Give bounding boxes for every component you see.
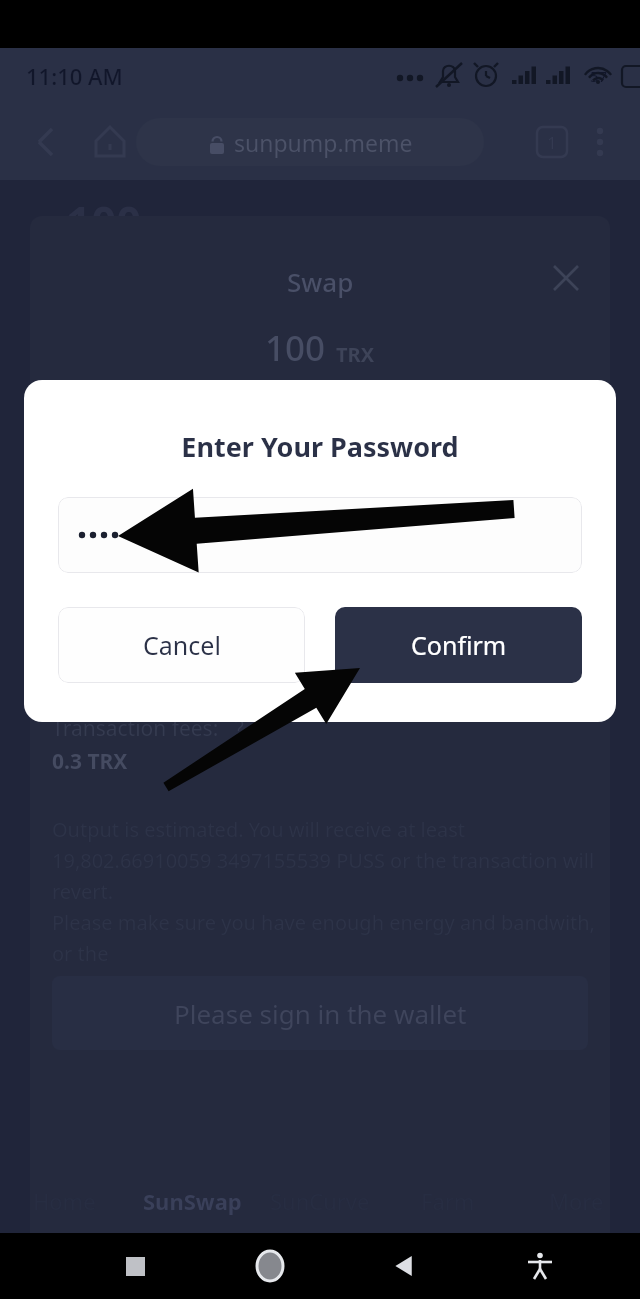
staticText: Confirm — [411, 628, 507, 662]
button[interactable]: Please sign in the wallet — [52, 976, 588, 1050]
staticText: 19,802.66910059 3497155539 PUSS — [52, 579, 404, 608]
staticText: 11:10 AM — [26, 61, 123, 91]
button[interactable]: Close — [548, 260, 584, 296]
staticText: Price Impact: ? — [52, 630, 207, 659]
staticText: TRX — [336, 341, 375, 368]
staticText: Cancel — [143, 628, 221, 662]
staticText: 57 — [590, 66, 608, 86]
staticText: Minimum Received: — [52, 546, 246, 575]
staticText: sunpump.meme — [234, 127, 413, 158]
staticText: -0.02% — [52, 663, 120, 692]
button[interactable]: Cancel — [58, 607, 305, 683]
button[interactable]: Accessibility — [513, 1239, 567, 1293]
button[interactable]: sunpump.meme — [136, 118, 484, 166]
staticText: Please sign in the wallet — [174, 996, 467, 1031]
button[interactable]: Home — [243, 1239, 297, 1293]
button[interactable]: Confirm — [335, 607, 582, 683]
button[interactable]: Home — [85, 117, 135, 167]
staticText: Swap — [287, 264, 354, 299]
staticText: 100 — [265, 324, 326, 372]
button[interactable]: Recent apps — [108, 1239, 162, 1293]
staticText: SunSwap — [143, 1186, 242, 1216]
staticText: 0.3 TRX — [52, 747, 128, 776]
staticText: Transaction fees: ? — [52, 714, 244, 743]
button[interactable]: SunSwap — [128, 1177, 256, 1225]
button[interactable]: Password field — [58, 497, 582, 573]
button[interactable]: Tabs — [530, 120, 574, 164]
button[interactable]: Back — [378, 1239, 432, 1293]
staticText: Enter Your Password — [24, 428, 616, 465]
staticText: 100 — [66, 192, 142, 252]
